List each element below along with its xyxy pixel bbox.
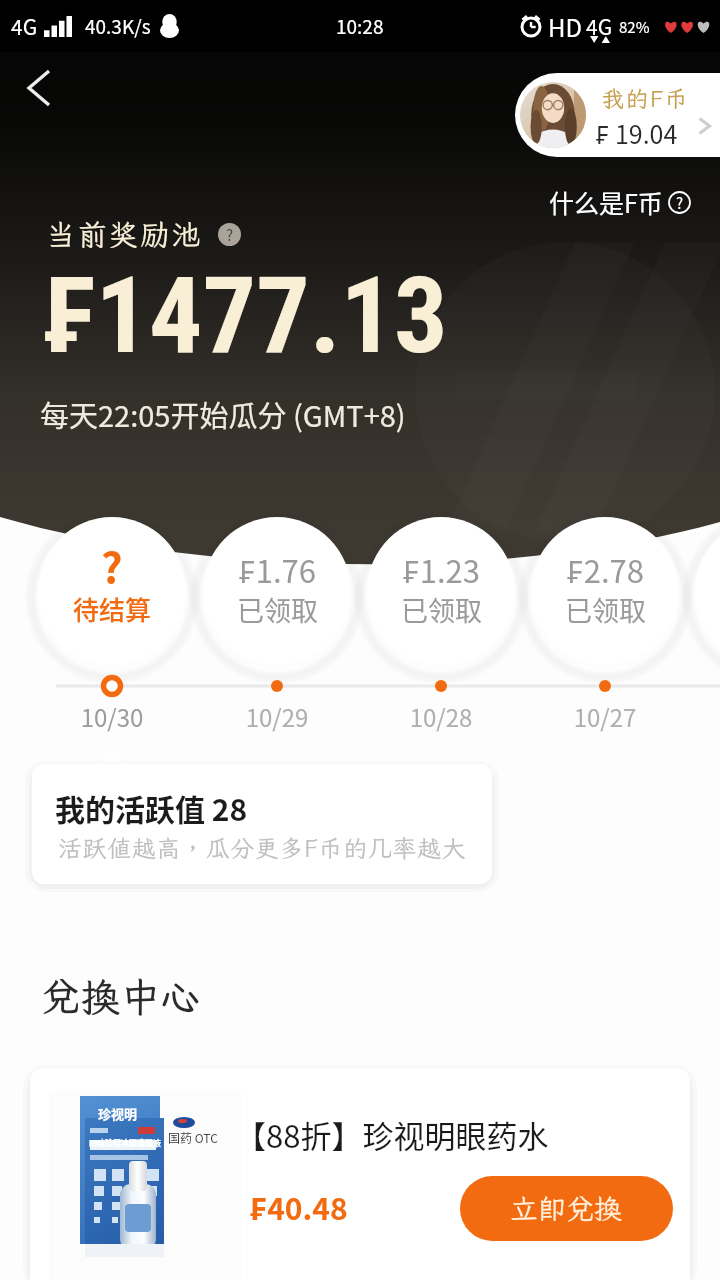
button[interactable]: ₣1.23 — [367, 517, 515, 665]
staticText: 82% — [619, 16, 650, 38]
staticText: 40.3K/s — [85, 12, 151, 40]
button[interactable]: 什么是F币 — [547, 182, 693, 222]
staticText: 10/28 — [381, 699, 501, 734]
staticText: ₣1.76 — [238, 547, 316, 592]
staticText: 当前奖励池 — [46, 215, 204, 253]
button[interactable]: 立即兑换 — [460, 1176, 673, 1241]
staticText: 10/30 — [52, 699, 172, 734]
staticText: ₣ 19.04 — [595, 115, 678, 151]
staticText: 我的F币 — [601, 83, 689, 113]
staticText: 四味珍层冰硼滴眼液 — [89, 1137, 161, 1149]
button[interactable]: ₣2.78 — [531, 517, 679, 665]
staticText: 什么是F币 — [549, 184, 663, 220]
staticText: ₣1477.13 — [45, 254, 448, 378]
staticText: HD — [548, 9, 582, 44]
staticText: ₣1.23 — [402, 547, 480, 592]
staticText: 10:28 — [336, 12, 384, 40]
staticText: 兑换中心 — [41, 971, 202, 1022]
button[interactable]: ₣1.02 — [695, 517, 720, 665]
staticText: ₣2.78 — [566, 547, 644, 592]
staticText: ? — [226, 224, 234, 246]
staticText: 已领取 — [401, 590, 482, 629]
staticText: 4G — [586, 11, 613, 41]
staticText: ₣40.48 — [250, 1185, 348, 1229]
button[interactable]: Back — [12, 61, 66, 115]
button[interactable]: ? — [38, 517, 186, 665]
staticText: 每天22:05开始瓜分 (GMT+8) — [40, 393, 406, 435]
staticText: 已领取 — [565, 590, 646, 629]
staticText: 已领取 — [237, 590, 318, 629]
staticText: ? — [676, 192, 684, 214]
button[interactable]: 我的活跃值 28 — [32, 764, 492, 884]
staticText: 4G — [11, 11, 38, 41]
button[interactable]: ₣1.76 — [203, 517, 351, 665]
staticText: 待结算 — [73, 590, 152, 628]
staticText: ? — [101, 534, 123, 595]
staticText: 珍视明 — [98, 1104, 138, 1123]
staticText: 活跃值越高，瓜分更多F币的几率越大 — [58, 832, 467, 864]
button[interactable]: 珍视明 — [30, 1068, 690, 1280]
button[interactable]: Help — [218, 223, 241, 246]
staticText: 10/29 — [217, 699, 337, 734]
staticText: 10/27 — [545, 699, 665, 734]
staticText: 立即兑换 — [510, 1190, 623, 1227]
staticText: 我的活跃值 28 — [55, 786, 248, 829]
staticText: 国药 OTC — [168, 1129, 218, 1146]
button[interactable]: 我的F币 — [515, 73, 720, 157]
staticText: 【88折】珍视明眼药水 — [235, 1112, 549, 1157]
